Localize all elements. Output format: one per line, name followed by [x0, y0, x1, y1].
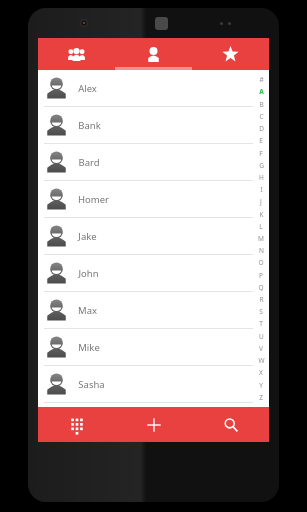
staticText: Bank	[78, 119, 101, 132]
button[interactable]: Max	[38, 292, 269, 329]
button[interactable]: Groups	[38, 38, 115, 70]
staticText: H	[259, 173, 264, 182]
staticText: X	[259, 368, 263, 377]
staticText: I	[260, 185, 263, 194]
button[interactable]: Search	[192, 407, 269, 442]
staticText: Jake	[78, 230, 97, 243]
staticText: U	[259, 332, 264, 341]
staticText: R	[259, 295, 264, 304]
button[interactable]: Jake	[38, 218, 269, 255]
staticText: T	[259, 319, 263, 328]
staticText: #	[259, 75, 264, 84]
staticText: Mike	[78, 341, 100, 354]
button[interactable]: Homer	[38, 181, 269, 218]
staticText: Y	[259, 381, 263, 390]
button[interactable]: John	[38, 255, 269, 292]
staticText: N	[259, 246, 264, 255]
staticText: Q	[258, 283, 264, 292]
staticText: Alex	[78, 82, 97, 95]
button[interactable]: Add contact	[115, 407, 192, 442]
staticText: Z	[259, 393, 263, 402]
staticText: Homer	[78, 193, 109, 206]
staticText: John	[78, 267, 99, 280]
button[interactable]: Alex	[38, 70, 269, 107]
staticText: J	[260, 197, 262, 206]
staticText: Sasha	[78, 378, 105, 391]
staticText: W	[258, 356, 265, 365]
staticText: S	[259, 307, 263, 316]
staticText: D	[259, 124, 264, 133]
staticText: A	[259, 87, 264, 96]
staticText: B	[259, 100, 264, 109]
staticText: Bard	[78, 156, 100, 169]
button[interactable]: Dialpad	[38, 407, 115, 442]
staticText: M	[258, 234, 264, 243]
staticText: Max	[78, 304, 97, 317]
staticText: E	[259, 136, 263, 145]
button[interactable]: Alphabet index	[253, 70, 269, 407]
staticText: C	[259, 112, 264, 121]
button[interactable]: Contacts	[115, 38, 192, 70]
button[interactable]: Mike	[38, 329, 269, 366]
button[interactable]: Bard	[38, 144, 269, 181]
button[interactable]: Favorites	[192, 38, 269, 70]
staticText: F	[259, 149, 263, 158]
button[interactable]: Bank	[38, 107, 269, 144]
staticText: P	[259, 271, 263, 280]
staticText: O	[258, 258, 264, 267]
staticText: K	[259, 210, 264, 219]
button[interactable]: Sasha	[38, 366, 269, 403]
staticText: G	[259, 161, 264, 170]
staticText: V	[259, 344, 263, 353]
staticText: L	[259, 222, 263, 231]
